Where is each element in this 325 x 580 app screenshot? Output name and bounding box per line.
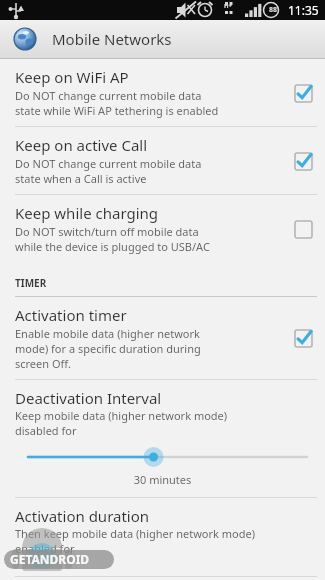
button[interactable]: Checked [291, 326, 315, 350]
staticText: Activation duration [15, 506, 150, 526]
button[interactable]: Mobile Networks [0, 20, 325, 58]
staticText: Do NOT change current mobile data [15, 88, 202, 103]
staticText: screen Off. [15, 356, 71, 371]
staticText: while the device is plugged to USB/AC [15, 239, 210, 254]
staticText: enabled for [15, 541, 75, 556]
staticText: mode) for a specific duration during [15, 341, 201, 356]
button[interactable] [0, 446, 325, 468]
staticText: 30 minutes [0, 472, 325, 487]
button[interactable]: Keep on active Call [0, 127, 325, 194]
staticText: Enable mobile data (higher network [15, 326, 200, 341]
staticText: 88 [269, 5, 278, 15]
staticText: Then keep mobile data (higher network mo… [15, 526, 255, 541]
staticText: H+ [224, 2, 233, 10]
staticText: Do NOT change current mobile data [15, 156, 202, 171]
staticText: 11:35 [288, 2, 319, 18]
staticText: GETANDROID [10, 551, 90, 567]
button[interactable]: Checked [291, 149, 315, 173]
staticText: Deactivation Interval [15, 388, 162, 408]
staticText: Keep on active Call [15, 135, 148, 155]
staticText: Keep mobile data (higher network mode) [15, 408, 228, 423]
button[interactable]: Activation duration [0, 498, 325, 580]
staticText: state while WiFi AP tethering is enabled [15, 103, 219, 118]
staticText: Activation timer [15, 305, 127, 325]
staticText: TIMER [15, 276, 47, 290]
button[interactable]: Keep while charging [0, 195, 325, 262]
staticText: Keep while charging [15, 203, 159, 223]
button[interactable]: Unchecked [291, 217, 315, 241]
staticText: Keep on WiFi AP [15, 67, 129, 87]
button[interactable]: Activation timer [0, 297, 325, 379]
staticText: disabled for [15, 423, 77, 438]
staticText: Mobile Networks [52, 29, 172, 49]
staticText: Do NOT switch/turn off mobile data [15, 224, 199, 239]
button[interactable]: Checked [291, 81, 315, 105]
staticText: state when a Call is active [15, 171, 147, 186]
button[interactable]: Keep on WiFi AP [0, 59, 325, 126]
button[interactable]: Deactivation Interval [0, 380, 325, 497]
